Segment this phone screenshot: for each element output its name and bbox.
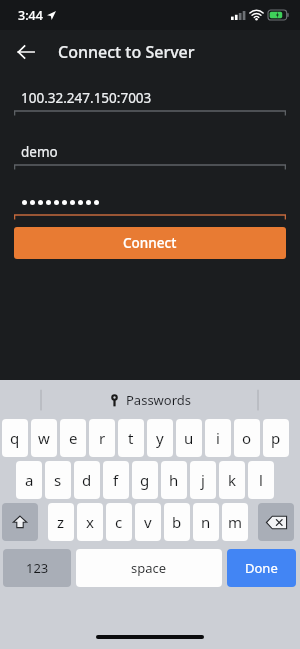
button[interactable]: i bbox=[205, 419, 231, 457]
staticText: v bbox=[144, 512, 152, 532]
staticText: d bbox=[82, 470, 92, 490]
button[interactable]: a bbox=[16, 461, 42, 499]
staticText: n bbox=[201, 512, 211, 532]
staticText: x bbox=[86, 512, 94, 532]
staticText: e bbox=[69, 428, 78, 448]
staticText: o bbox=[242, 428, 252, 448]
staticText: 123 bbox=[26, 559, 49, 577]
staticText: t bbox=[128, 428, 134, 448]
button[interactable]: f bbox=[103, 461, 129, 499]
button[interactable]: g bbox=[132, 461, 158, 499]
button[interactable]: x bbox=[77, 503, 103, 541]
staticText: space bbox=[131, 559, 167, 577]
button[interactable]: s bbox=[45, 461, 71, 499]
staticText: u bbox=[184, 428, 194, 448]
staticText: z bbox=[57, 512, 65, 532]
button[interactable]: v bbox=[135, 503, 161, 541]
button[interactable]: k bbox=[219, 461, 245, 499]
button[interactable]: q bbox=[2, 419, 28, 457]
staticText: f bbox=[113, 470, 119, 490]
staticText: b bbox=[172, 512, 182, 532]
button[interactable]: n bbox=[193, 503, 219, 541]
button[interactable]: c bbox=[106, 503, 132, 541]
button[interactable]: Done bbox=[227, 549, 296, 587]
button[interactable]: space bbox=[76, 549, 222, 587]
button[interactable]: t bbox=[118, 419, 144, 457]
staticText: Connect to Server bbox=[58, 41, 195, 63]
staticText: i bbox=[216, 428, 220, 448]
staticText: a bbox=[25, 470, 34, 490]
staticText: w bbox=[38, 428, 50, 448]
staticText: k bbox=[228, 470, 237, 490]
button[interactable]: y bbox=[147, 419, 173, 457]
button[interactable]: e bbox=[60, 419, 86, 457]
staticText: Connect bbox=[123, 234, 177, 252]
button[interactable]: Connect bbox=[14, 227, 286, 259]
button[interactable]: d bbox=[74, 461, 100, 499]
staticText: y bbox=[156, 428, 164, 448]
button[interactable]: z bbox=[48, 503, 74, 541]
button[interactable]: o bbox=[234, 419, 260, 457]
staticText: 3:44 bbox=[18, 7, 43, 24]
staticText: c bbox=[115, 512, 123, 532]
staticText: r bbox=[99, 428, 106, 448]
staticText: p bbox=[271, 428, 281, 448]
staticText: h bbox=[169, 470, 179, 490]
button[interactable]: Back bbox=[8, 34, 44, 70]
button[interactable]: w bbox=[31, 419, 57, 457]
staticText: j bbox=[201, 470, 205, 490]
staticText: Passwords bbox=[126, 391, 192, 409]
button[interactable]: m bbox=[222, 503, 248, 541]
staticText: demo bbox=[21, 143, 58, 161]
button[interactable]: r bbox=[89, 419, 115, 457]
button[interactable]: 123 bbox=[3, 549, 71, 587]
button[interactable]: u bbox=[176, 419, 202, 457]
button[interactable]: p bbox=[263, 419, 289, 457]
staticText: l bbox=[259, 470, 263, 490]
button[interactable]: Backspace bbox=[258, 503, 294, 541]
button[interactable]: h bbox=[161, 461, 187, 499]
button[interactable]: b bbox=[164, 503, 190, 541]
staticText: 100.32.247.150:7003 bbox=[21, 89, 152, 107]
staticText: m bbox=[228, 512, 243, 532]
staticText: s bbox=[54, 470, 62, 490]
staticText: q bbox=[10, 428, 20, 448]
staticText: Done bbox=[245, 559, 278, 577]
button[interactable]: Shift bbox=[2, 503, 38, 541]
staticText: g bbox=[140, 470, 150, 490]
button[interactable]: Passwords bbox=[108, 391, 192, 409]
button[interactable]: j bbox=[190, 461, 216, 499]
button[interactable]: l bbox=[248, 461, 274, 499]
